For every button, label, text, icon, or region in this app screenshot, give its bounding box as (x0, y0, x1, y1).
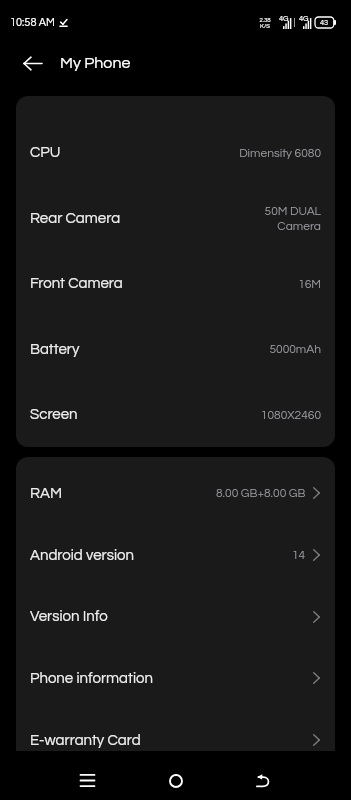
staticText: CPU (30, 145, 61, 160)
staticText: E-warranty Card (30, 733, 141, 748)
staticText: Battery (30, 342, 80, 357)
staticText: Version Info (30, 609, 108, 624)
button[interactable]: Version Info (16, 586, 335, 647)
button[interactable]: Back (12, 43, 52, 83)
staticText: 14 (292, 549, 306, 561)
staticText: 10:58 AM (10, 17, 55, 28)
staticText: 5000mAh (269, 343, 321, 355)
staticText: Phone information (30, 671, 153, 686)
staticText: 4G (299, 15, 309, 23)
staticText: RAM (30, 486, 63, 501)
button[interactable]: Phone information (16, 647, 335, 709)
staticText: 2.38 K/S (259, 17, 271, 29)
button[interactable]: Back (232, 751, 293, 800)
staticText: Android version (30, 548, 134, 563)
button[interactable]: Recent apps (57, 751, 118, 800)
staticText: 16M (298, 278, 321, 290)
staticText: 50M DUAL Camera (264, 205, 321, 232)
button[interactable]: E-warranty Card (16, 709, 335, 771)
button[interactable]: Android version (16, 524, 335, 586)
staticText: 1080X2460 (260, 409, 321, 421)
staticText: 43 (320, 19, 329, 27)
staticText: Front Camera (30, 276, 123, 291)
staticText: Dimensity 6080 (239, 147, 321, 159)
button[interactable]: RAM (16, 462, 335, 524)
staticText: 8.00 GB+8.00 GB (216, 487, 306, 499)
staticText: Rear Camera (30, 211, 121, 226)
button[interactable]: Home (145, 751, 206, 800)
staticText: My Phone (60, 55, 131, 71)
staticText: Screen (30, 407, 78, 422)
staticText: 4G (279, 15, 289, 23)
